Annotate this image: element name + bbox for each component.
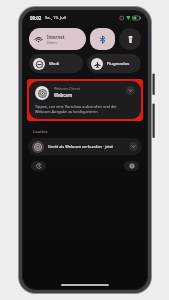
staticText: Tippen, um eine Vorschau aufzurufen und … xyxy=(35,104,117,114)
button[interactable]: Gerät als Webcam verbunden · jetzt xyxy=(28,138,142,155)
staticText: Modi xyxy=(49,61,60,67)
button[interactable]: Benachrichtigungsverlauf xyxy=(31,161,46,171)
staticText: Webcam-Dienst xyxy=(54,86,80,91)
button[interactable]: Flugmodus xyxy=(87,54,141,73)
staticText: Flugmodus xyxy=(107,61,130,67)
button[interactable]: Bluetooth xyxy=(90,28,115,50)
staticText: Daten xyxy=(47,40,57,45)
button[interactable]: Erweitern xyxy=(129,142,138,151)
button[interactable]: Internet xyxy=(29,28,86,50)
button[interactable]: Modi xyxy=(29,54,83,73)
staticText: Internet xyxy=(47,34,65,40)
staticText: Webcam xyxy=(54,92,73,98)
button[interactable]: Einstellungen xyxy=(124,161,139,171)
button[interactable]: Erweitern xyxy=(126,86,135,95)
staticText: Lautlos xyxy=(33,129,48,135)
button[interactable]: Webcam-Dienst xyxy=(29,81,141,119)
staticText: Sa., 19. Juli xyxy=(45,15,66,21)
button[interactable]: Taschenlampe xyxy=(119,28,141,50)
staticText: 09:02 xyxy=(30,15,42,21)
staticText: Gerät als Webcam verbunden · jetzt xyxy=(48,144,127,149)
